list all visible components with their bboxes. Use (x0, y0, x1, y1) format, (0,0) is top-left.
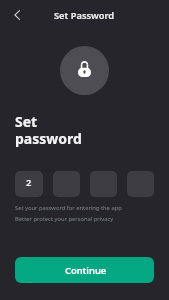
staticText: Set password (15, 112, 82, 148)
button[interactable] (127, 171, 154, 197)
staticText: Set your password for entering the app (15, 204, 122, 212)
button[interactable] (53, 171, 80, 197)
staticText: Better protect your personal privacy (15, 215, 114, 223)
staticText: Set Password (54, 9, 115, 22)
button[interactable]: 2 (15, 171, 43, 197)
button[interactable]: Back (6, 4, 28, 26)
button[interactable] (90, 171, 117, 197)
staticText: 2 (26, 176, 32, 189)
button[interactable]: Continue (15, 257, 154, 283)
staticText: Continue (65, 264, 107, 277)
